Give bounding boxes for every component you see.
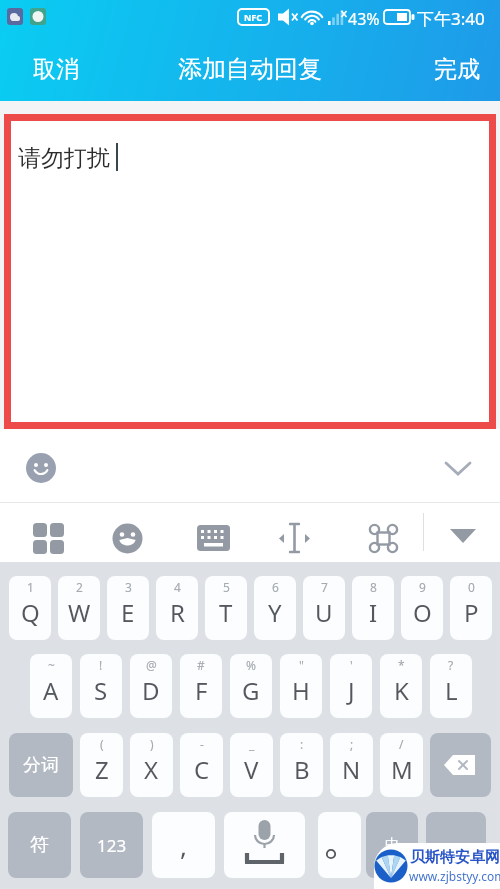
staticText: T <box>219 596 233 629</box>
staticText: L <box>445 674 458 707</box>
button[interactable] <box>374 843 500 889</box>
button[interactable]: % <box>230 654 272 718</box>
staticText: U <box>315 596 333 629</box>
button[interactable]: 请勿打扰 <box>4 114 496 429</box>
staticText: : <box>300 736 304 752</box>
staticText: 添加自动回复 <box>178 54 322 84</box>
staticText: 6 <box>272 579 279 595</box>
button[interactable]: _ <box>230 733 273 797</box>
button[interactable] <box>318 812 361 878</box>
button[interactable]: 完成 <box>390 44 500 94</box>
staticText: X <box>144 753 159 786</box>
button[interactable]: 取消 <box>20 44 110 94</box>
button[interactable]: 4 <box>156 576 198 640</box>
staticText: _ <box>249 736 255 752</box>
button[interactable]: * <box>380 654 422 718</box>
button[interactable] <box>224 812 305 878</box>
staticText: A <box>43 674 59 707</box>
staticText: 请勿打扰 <box>18 144 110 173</box>
button[interactable] <box>430 733 491 797</box>
button[interactable]: # <box>180 654 222 718</box>
staticText: 7 <box>321 579 328 595</box>
staticText: ; <box>350 736 354 752</box>
button[interactable]: 中 <box>366 812 418 878</box>
button[interactable] <box>271 515 318 562</box>
button[interactable] <box>104 515 151 562</box>
button[interactable]: ~ <box>30 654 72 718</box>
staticText: ~ <box>48 657 55 673</box>
staticText: M <box>391 753 413 786</box>
staticText: I <box>369 596 378 629</box>
button[interactable]: 分词 <box>9 733 73 797</box>
button[interactable]: 9 <box>401 576 443 640</box>
staticText: 43% <box>348 8 380 30</box>
staticText: % <box>246 657 256 673</box>
staticText: P <box>464 596 479 629</box>
button[interactable]: ? <box>430 654 472 718</box>
button[interactable]: ) <box>130 733 173 797</box>
staticText: 8 <box>370 579 377 595</box>
staticText: F <box>195 674 208 707</box>
staticText: E <box>121 596 135 629</box>
button[interactable]: 1 <box>9 576 51 640</box>
staticText: # <box>197 657 205 673</box>
staticText: ( <box>100 736 104 752</box>
staticText: * <box>398 657 405 673</box>
staticText: ) <box>150 736 154 752</box>
staticText: 贝斯特安卓网 <box>410 848 500 867</box>
button[interactable] <box>438 452 478 484</box>
button[interactable] <box>25 515 72 562</box>
button[interactable] <box>360 515 407 562</box>
button[interactable]: 2 <box>58 576 100 640</box>
button[interactable]: 8 <box>352 576 394 640</box>
staticText: K <box>394 674 409 707</box>
button[interactable]: 6 <box>254 576 296 640</box>
staticText: 3 <box>125 579 132 595</box>
button[interactable]: ! <box>80 654 122 718</box>
staticText: W <box>68 596 91 629</box>
button[interactable]: ' <box>330 654 372 718</box>
button[interactable]: 123 <box>80 812 143 878</box>
button[interactable]: 3 <box>107 576 149 640</box>
button[interactable]: ( <box>80 733 123 797</box>
button[interactable]: / <box>380 733 423 797</box>
staticText: S <box>94 674 108 707</box>
staticText: @ <box>146 657 157 673</box>
staticText: www.zjbstyy.com <box>409 868 500 884</box>
staticText: 2 <box>76 579 83 595</box>
staticText: 完成 <box>434 55 480 84</box>
staticText: ' <box>350 657 353 673</box>
button[interactable] <box>24 451 58 485</box>
button[interactable]: @ <box>130 654 172 718</box>
staticText: O <box>413 596 432 629</box>
button[interactable]: - <box>180 733 223 797</box>
staticText: J <box>348 674 355 707</box>
button[interactable] <box>190 515 237 562</box>
button[interactable]: " <box>280 654 322 718</box>
staticText: 5 <box>223 579 230 595</box>
staticText: 中 <box>385 836 399 854</box>
staticText: 下午3:40 <box>417 7 485 30</box>
staticText: - <box>200 736 204 752</box>
staticText: N <box>342 753 361 786</box>
button[interactable]: 5 <box>205 576 247 640</box>
staticText: 0 <box>468 579 475 595</box>
staticText: ? <box>448 657 454 673</box>
staticText: C <box>194 753 210 786</box>
staticText: B <box>294 753 310 786</box>
staticText: D <box>142 674 160 707</box>
staticText: R <box>170 596 185 629</box>
staticText: " <box>299 657 304 673</box>
button[interactable]: 符 <box>8 812 71 878</box>
button[interactable]: ; <box>330 733 373 797</box>
button[interactable] <box>426 812 486 878</box>
staticText: ! <box>99 657 103 673</box>
button[interactable] <box>443 515 483 555</box>
button[interactable]: 7 <box>303 576 345 640</box>
staticText: 1 <box>27 579 34 595</box>
staticText: G <box>242 674 260 707</box>
button[interactable]: 0 <box>450 576 492 640</box>
button[interactable]: : <box>280 733 323 797</box>
button[interactable]: , <box>152 812 215 878</box>
staticText: Z <box>95 753 109 786</box>
